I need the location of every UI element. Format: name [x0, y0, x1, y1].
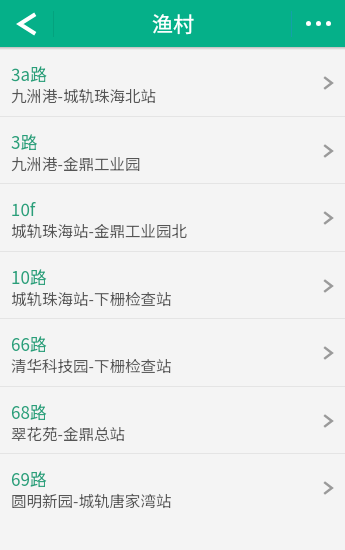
staticText: 清华科技园-下栅检查站 [11, 354, 172, 376]
button[interactable]: 10f [0, 184, 345, 252]
staticText: 10f [11, 196, 36, 221]
staticText: 翠花苑-金鼎总站 [11, 422, 125, 444]
button[interactable]: 3a路 [0, 49, 345, 117]
staticText: 九洲港-金鼎工业园 [11, 152, 141, 174]
staticText: 69路 [11, 466, 47, 491]
button[interactable]: 68路 [0, 387, 345, 455]
staticText: 渔村 [152, 8, 194, 38]
staticText: 城轨珠海站-下栅检查站 [11, 287, 172, 309]
staticText: 66路 [11, 331, 47, 356]
button[interactable]: 10路 [0, 252, 345, 320]
staticText: 10路 [11, 264, 47, 289]
button[interactable]: 69路 [0, 454, 345, 522]
staticText: 城轨珠海站-金鼎工业园北 [11, 219, 187, 241]
staticText: 3路 [11, 129, 38, 154]
staticText: 圆明新园-城轨唐家湾站 [11, 489, 172, 511]
button[interactable]: More options [292, 0, 345, 47]
staticText: 九洲港-城轨珠海北站 [11, 84, 156, 106]
button[interactable]: 3路 [0, 117, 345, 185]
staticText: 68路 [11, 399, 47, 424]
staticText: 3a路 [11, 61, 48, 86]
button[interactable]: Back [0, 0, 53, 47]
button[interactable]: 66路 [0, 319, 345, 387]
